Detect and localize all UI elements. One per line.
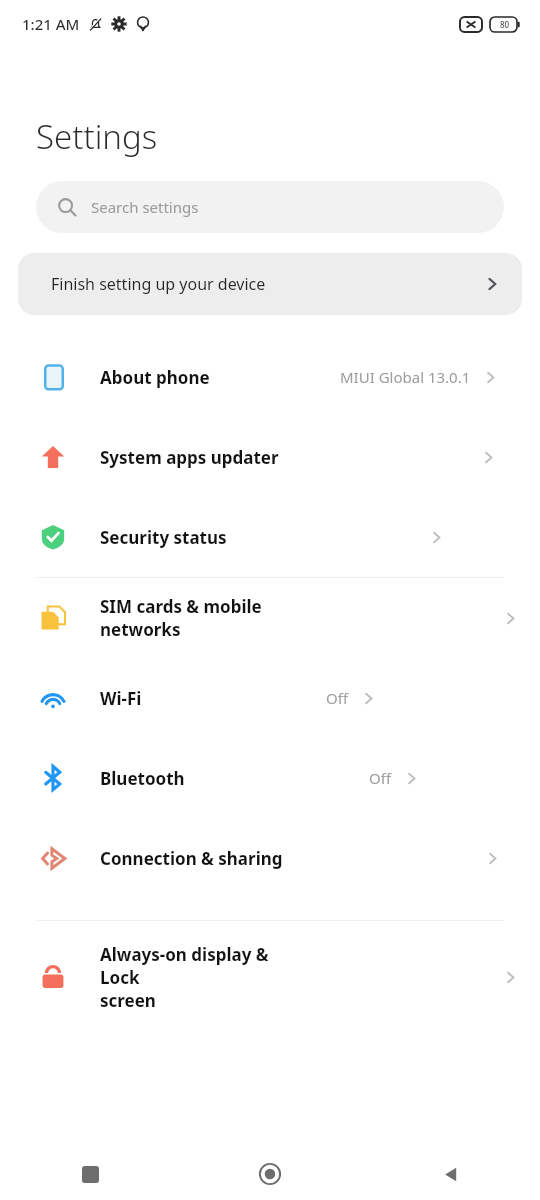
staticText: System apps updater: [100, 446, 279, 469]
button[interactable]: SIM cards & mobile networks: [0, 578, 540, 658]
staticText: 80: [500, 19, 510, 30]
button[interactable]: System apps updater: [0, 417, 540, 497]
button[interactable]: Finish setting up your device: [18, 253, 522, 315]
staticText: Wi-Fi: [100, 687, 142, 710]
staticText: 1:21 AM: [22, 14, 80, 34]
button[interactable]: Home: [180, 1148, 360, 1200]
staticText: Bluetooth: [100, 767, 185, 790]
staticText: Search settings: [91, 197, 199, 217]
button[interactable]: Security status: [0, 497, 540, 577]
button[interactable]: About phone: [0, 337, 540, 417]
button[interactable]: Wi-Fi: [0, 658, 540, 738]
staticText: Always-on display & Lock screen: [100, 943, 301, 1012]
staticText: Off: [326, 688, 349, 708]
staticText: Connection & sharing: [100, 847, 283, 870]
staticText: Security status: [100, 526, 227, 549]
staticText: About phone: [100, 366, 210, 389]
staticText: MIUI Global 13.0.1: [340, 367, 471, 387]
button[interactable]: Recent apps: [0, 1148, 180, 1200]
staticText: Settings: [36, 114, 158, 159]
button[interactable]: Always-on display & Lock screen: [0, 933, 540, 1021]
staticText: SIM cards & mobile networks: [100, 595, 301, 641]
staticText: Finish setting up your device: [51, 273, 266, 295]
button[interactable]: Connection & sharing: [0, 818, 540, 898]
button[interactable]: Bluetooth: [0, 738, 540, 818]
button[interactable]: Back: [360, 1148, 540, 1200]
button[interactable]: Search settings: [36, 181, 504, 233]
staticText: Off: [369, 768, 392, 788]
